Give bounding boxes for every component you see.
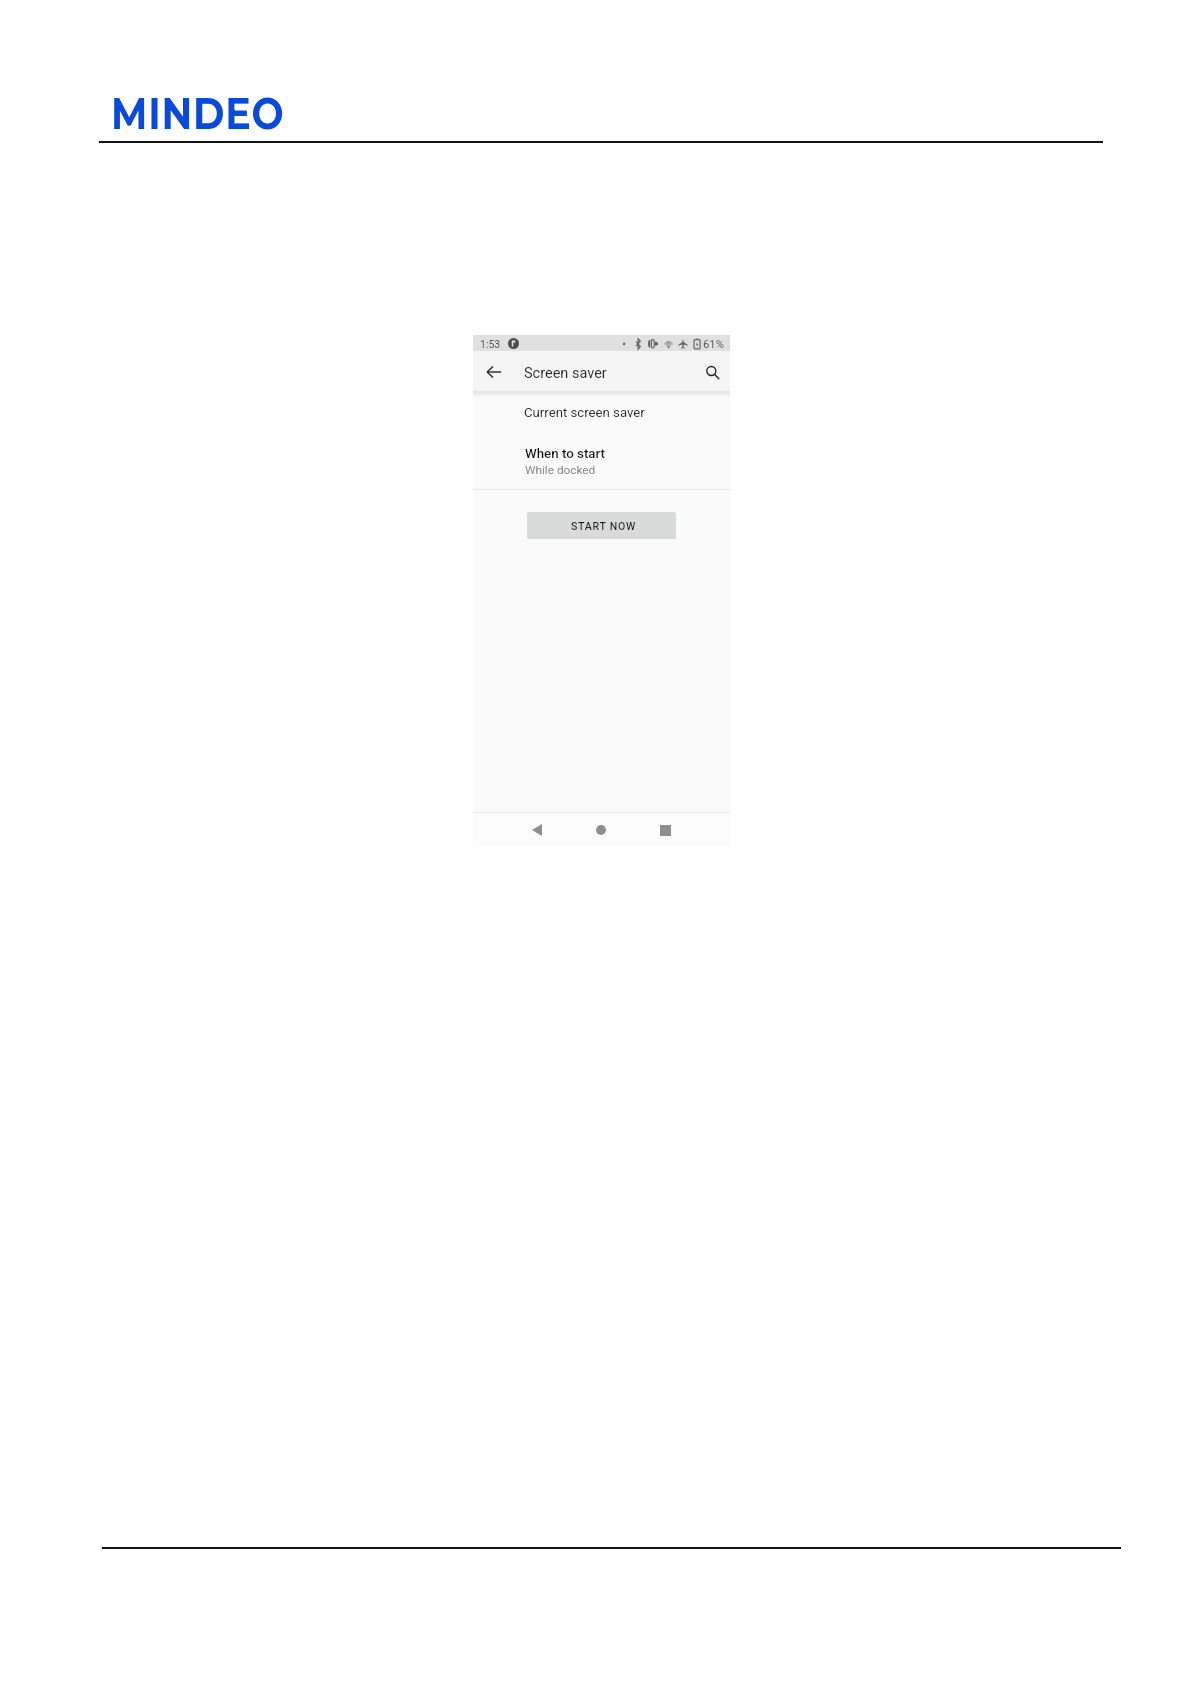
- button[interactable]: Search: [700, 360, 724, 384]
- button[interactable]: Current screen saver: [473, 392, 730, 436]
- staticText: Current screen saver: [524, 405, 645, 420]
- button[interactable]: When to start: [473, 436, 730, 489]
- staticText: When to start: [525, 446, 605, 462]
- staticText: Screen saver: [524, 365, 607, 382]
- staticText: MINDEO: [111, 87, 285, 139]
- staticText: 1:53: [480, 338, 501, 350]
- staticText: While docked: [525, 463, 596, 477]
- staticText: START NOW: [571, 520, 637, 532]
- button[interactable]: START NOW: [527, 512, 676, 539]
- button[interactable]: Home: [588, 817, 614, 843]
- staticText: 61%: [703, 338, 724, 351]
- button[interactable]: Navigate up: [482, 360, 506, 384]
- button[interactable]: Back: [524, 817, 550, 843]
- button[interactable]: Recent apps: [652, 817, 678, 843]
